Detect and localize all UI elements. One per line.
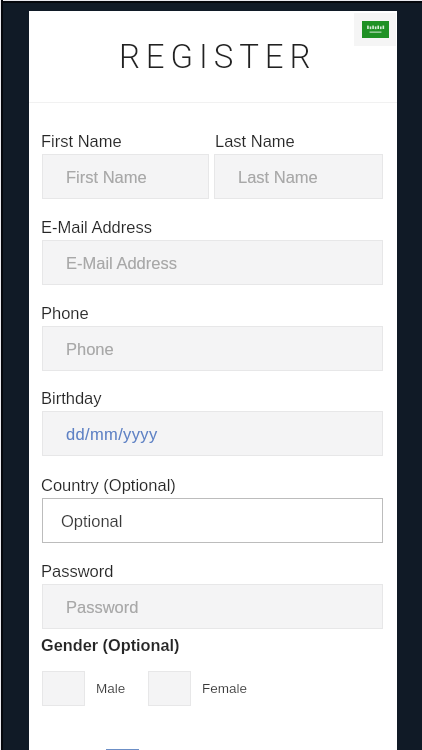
- staticText: Password: [66, 598, 139, 616]
- staticText: Optional: [61, 512, 123, 530]
- staticText: REGISTER: [119, 37, 317, 76]
- button[interactable]: First Name input: [42, 154, 209, 199]
- button[interactable]: Last Name input: [214, 154, 383, 199]
- staticText: Last Name: [238, 168, 318, 186]
- staticText: First Name: [41, 132, 122, 150]
- staticText: Female: [202, 681, 248, 696]
- staticText: Male: [96, 681, 126, 696]
- button[interactable]: Phone input: [42, 326, 383, 371]
- button[interactable]: Female: [148, 671, 191, 706]
- staticText: Last Name: [215, 132, 295, 150]
- staticText: Country (Optional): [41, 476, 176, 494]
- staticText: Birthday: [41, 389, 102, 407]
- button[interactable]: E-Mail Address input: [42, 240, 383, 285]
- staticText: E-Mail Address: [41, 218, 152, 236]
- button[interactable]: App logo: [354, 13, 396, 46]
- staticText: E-Mail Address: [66, 254, 177, 272]
- button[interactable]: Male: [42, 671, 85, 706]
- staticText: First Name: [66, 168, 147, 186]
- staticText: Password: [41, 562, 114, 580]
- button[interactable]: Password input: [42, 584, 383, 629]
- button[interactable]: Country selector: [42, 498, 383, 543]
- staticText: Phone: [41, 304, 89, 322]
- staticText: dd/mm/yyyy: [66, 425, 158, 443]
- button[interactable]: Birthday input: [42, 411, 383, 456]
- staticText: Gender (Optional): [41, 636, 180, 654]
- staticText: Phone: [66, 340, 114, 358]
